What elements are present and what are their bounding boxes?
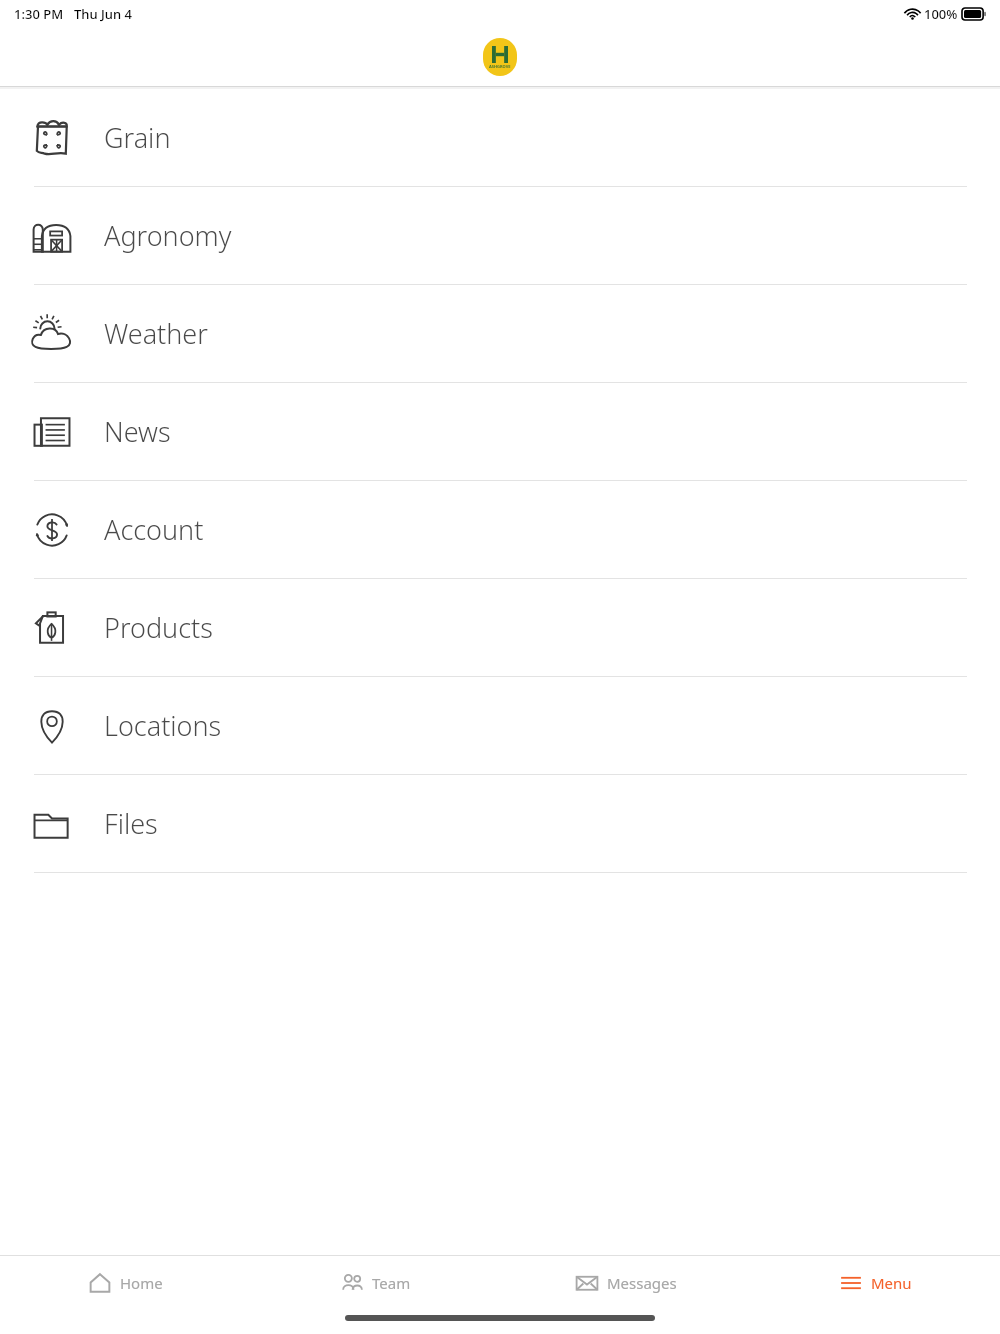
staticText: Team: [372, 1273, 411, 1293]
staticText: Files: [104, 805, 158, 842]
staticText: Menu: [871, 1273, 912, 1293]
staticText: 1:30 PM: [14, 5, 64, 23]
button[interactable]: Weather: [0, 285, 1000, 383]
staticText: News: [104, 413, 171, 450]
button[interactable]: Home logo: [483, 38, 517, 76]
button[interactable]: News: [0, 383, 1000, 481]
button[interactable]: Products: [0, 579, 1000, 677]
button[interactable]: Account: [0, 481, 1000, 579]
staticText: Thu Jun 4: [74, 5, 132, 23]
button[interactable]: Grain: [0, 89, 1000, 187]
button[interactable]: Agronomy: [0, 187, 1000, 285]
staticText: Products: [104, 609, 213, 646]
staticText: Weather: [104, 315, 208, 352]
staticText: Locations: [104, 707, 222, 744]
button[interactable]: Messages: [500, 1256, 750, 1310]
staticText: Messages: [607, 1273, 677, 1293]
staticText: ASHGROVE: [489, 64, 511, 69]
button[interactable]: Team: [250, 1256, 500, 1310]
staticText: Home: [120, 1273, 163, 1293]
button[interactable]: Locations: [0, 677, 1000, 775]
staticText: 100%: [924, 5, 958, 23]
staticText: Grain: [104, 119, 171, 156]
button[interactable]: Menu: [750, 1256, 1000, 1310]
button[interactable]: Files: [0, 775, 1000, 873]
staticText: Account: [104, 511, 204, 548]
staticText: Agronomy: [104, 217, 232, 254]
button[interactable]: Home: [0, 1256, 250, 1310]
